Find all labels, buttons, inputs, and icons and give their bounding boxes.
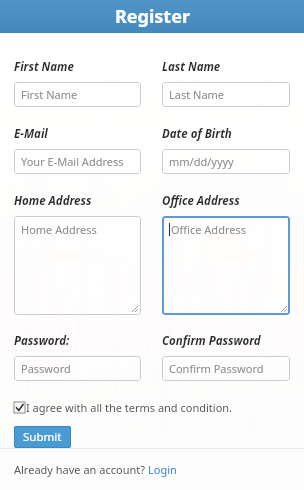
staticText: First Name xyxy=(21,87,78,102)
staticText: Password xyxy=(21,361,71,376)
staticText: Already have an account? xyxy=(14,462,148,477)
button[interactable]: mm/dd/yyyy xyxy=(162,149,290,174)
staticText: Submit xyxy=(23,429,62,445)
staticText: Confirm Password xyxy=(162,333,261,349)
button[interactable]: Password xyxy=(14,356,141,381)
button[interactable]: Your E-Mail Address xyxy=(14,149,141,174)
staticText: Office Address xyxy=(171,222,246,237)
staticText: Your E-Mail Address xyxy=(21,154,124,169)
staticText: mm/dd/yyyy xyxy=(169,154,234,169)
button[interactable]: Home Address xyxy=(14,216,141,315)
button[interactable]: Login xyxy=(148,462,177,477)
staticText: Office Address xyxy=(162,193,240,209)
staticText: First Name xyxy=(14,59,74,75)
staticText: Password: xyxy=(14,333,70,349)
button[interactable]: Confirm Password xyxy=(162,356,290,381)
staticText: E-Mail xyxy=(14,126,48,142)
staticText: Home Address xyxy=(21,222,97,237)
button[interactable]: I agree with all the terms and condition… xyxy=(14,399,233,416)
staticText: Last Name xyxy=(169,87,225,102)
staticText: Last Name xyxy=(162,59,221,75)
button[interactable]: Office Address xyxy=(162,216,290,315)
staticText: Register xyxy=(115,4,190,29)
staticText: Date of Birth xyxy=(162,126,232,142)
button[interactable]: Submit xyxy=(14,426,71,448)
button[interactable]: Last Name xyxy=(162,82,290,107)
button[interactable]: First Name xyxy=(14,82,141,107)
staticText: I agree with all the terms and condition… xyxy=(26,400,233,415)
staticText: Login xyxy=(148,462,177,477)
staticText: Confirm Password xyxy=(169,361,264,376)
staticText: Home Address xyxy=(14,193,92,209)
